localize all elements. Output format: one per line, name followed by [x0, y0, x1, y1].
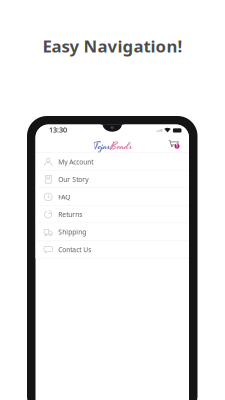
button[interactable]: FAQ: [35, 188, 189, 206]
staticText: Contact Us: [58, 245, 91, 254]
button[interactable]: Shipping: [35, 223, 189, 241]
staticText: Shipping: [58, 228, 86, 236]
staticText: FAQ: [58, 192, 70, 201]
staticText: 1: [175, 143, 178, 149]
staticText: Easy Navigation!: [42, 34, 182, 57]
staticText: Returns: [58, 210, 82, 219]
staticText: Our Story: [58, 175, 88, 184]
button[interactable]: Contact Us: [35, 241, 189, 258]
button[interactable]: Our Story: [35, 171, 189, 188]
button[interactable]: Returns: [35, 206, 189, 223]
staticText: My Account: [58, 157, 93, 166]
button[interactable]: My Account: [35, 153, 189, 171]
staticText: 13:30: [49, 125, 67, 134]
staticText: Tejas: [93, 138, 110, 154]
button[interactable]: Cart: [164, 139, 183, 150]
staticText: Beads: [110, 138, 132, 154]
